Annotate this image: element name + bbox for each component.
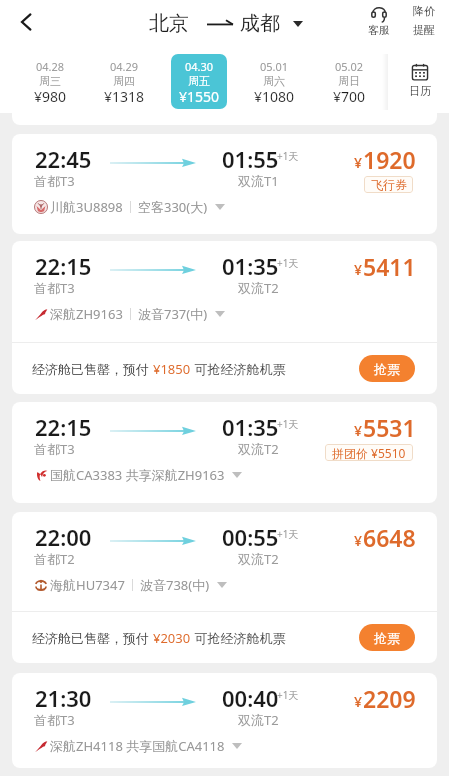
staticText: 21:30 — [35, 683, 92, 713]
staticText: ¥ — [354, 531, 363, 550]
button[interactable]: 日历 — [396, 63, 444, 105]
staticText: 可抢经济舱机票 — [191, 629, 286, 647]
staticText: 周三 — [39, 74, 61, 88]
button[interactable]: Back — [4, 0, 48, 44]
staticText: ¥ — [354, 260, 363, 279]
staticText: 降价 — [413, 4, 435, 18]
staticText: 波音737(中) — [138, 305, 208, 323]
staticText: 深航ZH4118 共享国航CA4118 — [50, 737, 225, 755]
staticText: 日历 — [409, 84, 431, 98]
staticText: 双流T2 — [238, 440, 279, 458]
staticText: 空客330(大) — [138, 198, 208, 216]
button[interactable]: 04.30 — [171, 54, 227, 109]
button[interactable]: 05.02 — [321, 54, 377, 109]
staticText: 5411 — [363, 251, 416, 282]
staticText: ¥ — [354, 692, 363, 711]
staticText: ¥1850 — [153, 360, 191, 378]
staticText: 国航CA3383 共享深航ZH9163 — [50, 466, 225, 484]
button[interactable]: 客服 — [357, 6, 401, 42]
staticText: 00:55 — [222, 522, 279, 552]
staticText: 首都T3 — [34, 172, 75, 190]
staticText: 首都T3 — [34, 440, 75, 458]
staticText: 抢票 — [374, 361, 400, 377]
staticText: ¥ — [354, 421, 363, 440]
staticText: +1天 — [277, 688, 299, 702]
staticText: 首都T2 — [34, 550, 75, 568]
staticText: 周五 — [188, 74, 210, 88]
staticText: 双流T2 — [238, 279, 279, 297]
staticText: ¥ — [354, 153, 363, 172]
button[interactable]: 21:30 — [12, 673, 437, 768]
button[interactable]: 抢票 — [359, 355, 415, 382]
staticText: 5531 — [363, 412, 416, 443]
staticText: 00:40 — [222, 683, 279, 713]
staticText: 提醒 — [413, 23, 435, 37]
button[interactable]: 22:00 — [12, 512, 437, 611]
button[interactable]: 22:15 — [12, 241, 437, 342]
staticText: 01:55 — [222, 144, 279, 174]
staticText: 04.28 — [36, 59, 65, 74]
staticText: 04.30 — [185, 59, 214, 74]
staticText: 双流T1 — [238, 172, 279, 190]
staticText: 周日 — [338, 74, 360, 88]
staticText: 首都T3 — [34, 279, 75, 297]
staticText: ¥1318 — [104, 87, 145, 106]
staticText: 川航3U8898 — [50, 198, 123, 216]
staticText: +1天 — [277, 149, 299, 163]
staticText: 经济舱已售罄，预付 — [32, 629, 153, 647]
staticText: 飞行券 — [371, 177, 407, 192]
staticText: 抢票 — [374, 630, 400, 646]
staticText: 客服 — [368, 23, 390, 37]
staticText: 22:15 — [35, 251, 92, 281]
staticText: 周六 — [263, 74, 285, 88]
staticText: ¥700 — [333, 87, 366, 106]
staticText: 1920 — [363, 144, 416, 175]
staticText: 经济舱已售罄，预付 — [32, 360, 153, 378]
staticText: 海航HU7347 — [50, 576, 125, 594]
staticText: +1天 — [277, 256, 299, 270]
staticText: 周四 — [113, 74, 135, 88]
button[interactable]: 04.29 — [96, 54, 152, 109]
staticText: 波音738(中) — [140, 576, 210, 594]
staticText: 双流T2 — [238, 711, 279, 729]
button[interactable]: 22:45 — [12, 134, 437, 234]
staticText: 22:00 — [35, 522, 92, 552]
staticText: ¥980 — [34, 87, 67, 106]
button[interactable]: 22:15 — [12, 402, 437, 503]
staticText: 22:45 — [35, 144, 92, 174]
button[interactable]: 北京 — [149, 9, 303, 37]
button[interactable]: 抢票 — [359, 624, 415, 651]
staticText: 拼团价 ¥5510 — [332, 445, 406, 461]
button[interactable]: 经济舱已售罄，预付 — [12, 342, 437, 394]
button[interactable]: 经济舱已售罄，预付 — [12, 611, 437, 663]
staticText: 成都 — [240, 11, 280, 36]
staticText: 深航ZH9163 — [50, 305, 123, 323]
staticText: 北京 — [149, 11, 189, 36]
staticText: 22:15 — [35, 412, 92, 442]
staticText: 6648 — [363, 522, 416, 553]
staticText: ¥1080 — [254, 87, 295, 106]
staticText: 05.02 — [335, 59, 364, 74]
button[interactable]: 04.28 — [22, 54, 78, 109]
button[interactable]: 降价 — [402, 4, 446, 42]
staticText: +1天 — [277, 527, 299, 541]
staticText: 可抢经济舱机票 — [191, 360, 286, 378]
staticText: 首都T3 — [34, 711, 75, 729]
staticText: ¥1550 — [179, 87, 220, 106]
staticText: +1天 — [277, 417, 299, 431]
staticText: 双流T2 — [238, 550, 279, 568]
staticText: ¥2030 — [153, 629, 191, 647]
staticText: 01:35 — [222, 251, 279, 281]
staticText: 2209 — [363, 683, 416, 714]
staticText: 04.29 — [110, 59, 139, 74]
staticText: 01:35 — [222, 412, 279, 442]
staticText: 05.01 — [260, 59, 289, 74]
button[interactable]: 05.01 — [246, 54, 302, 109]
